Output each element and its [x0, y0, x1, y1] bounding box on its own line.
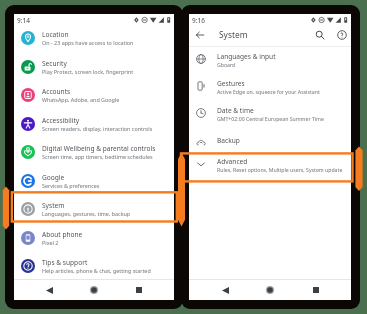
staticText: System: [219, 29, 248, 40]
staticText: Languages & input: [217, 52, 276, 61]
button[interactable]: Google: [14, 173, 174, 202]
button[interactable]: Gestures: [189, 79, 351, 107]
staticText: About phone: [42, 230, 83, 239]
button[interactable]: Languages & input: [189, 52, 351, 80]
button[interactable]: Digital Wellbeing & parental controls: [14, 144, 174, 173]
staticText: Google: [42, 173, 65, 182]
staticText: On - 23 apps have access to location: [42, 39, 134, 46]
staticText: Tips & support: [42, 258, 88, 267]
staticText: 9:14: [17, 16, 30, 25]
staticText: Advanced: [217, 157, 248, 166]
button[interactable]: Accessibility: [14, 116, 174, 145]
button[interactable]: Advanced: [189, 157, 351, 185]
staticText: Backup: [217, 136, 240, 145]
staticText: Pixel 2: [42, 239, 59, 246]
staticText: Languages, gestures, time, backup: [42, 210, 131, 217]
staticText: Digital Wellbeing & parental controls: [42, 144, 156, 153]
button[interactable]: Back: [215, 280, 235, 300]
staticText: Screen time, app timers, bedtime schedul…: [42, 153, 153, 160]
staticText: Gboard: [217, 61, 236, 68]
button[interactable]: Tips & support: [14, 258, 174, 287]
staticText: GMT+02:00 Central European Summer Time: [217, 115, 324, 122]
button[interactable]: Home: [84, 280, 104, 300]
button[interactable]: Recent apps: [129, 280, 149, 300]
staticText: Date & time: [217, 106, 254, 115]
button[interactable]: Security: [14, 59, 174, 88]
staticText: Rules, Reset options, Multiple users, Sy…: [217, 166, 343, 173]
staticText: Accounts: [42, 87, 71, 96]
button[interactable]: Back: [189, 25, 211, 44]
button[interactable]: About phone: [14, 230, 174, 259]
staticText: Active Edge on, squeeze for your Assista…: [217, 88, 320, 95]
staticText: Play Protect, screen lock, fingerprint: [42, 68, 134, 75]
staticText: Screen readers, display, interaction con…: [42, 125, 153, 132]
staticText: Location: [42, 30, 69, 39]
staticText: Security: [42, 59, 67, 68]
button[interactable]: Date & time: [189, 106, 351, 134]
button[interactable]: Backup: [189, 136, 351, 157]
button[interactable]: System: [14, 201, 174, 230]
button[interactable]: Search: [311, 25, 329, 44]
button[interactable]: Accounts: [14, 87, 174, 116]
button[interactable]: Home: [260, 280, 280, 300]
staticText: Accessibility: [42, 116, 80, 125]
staticText: WhatsApp, Adobe, and Google: [42, 96, 120, 103]
button[interactable]: Back: [39, 280, 59, 300]
button[interactable]: Location: [14, 30, 174, 59]
staticText: Gestures: [217, 79, 245, 88]
staticText: Help articles, phone & chat, getting sta…: [42, 267, 151, 274]
button[interactable]: Recent apps: [306, 280, 326, 300]
staticText: 9:16: [192, 16, 205, 25]
button[interactable]: Help: [333, 25, 351, 44]
staticText: System: [42, 201, 65, 210]
staticText: Services & preferences: [42, 182, 100, 189]
